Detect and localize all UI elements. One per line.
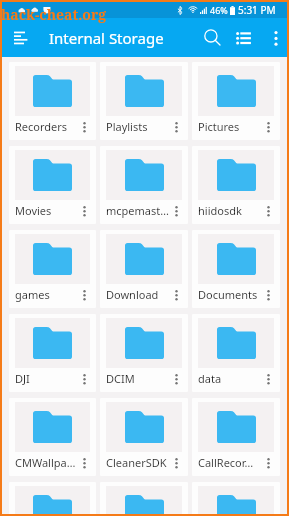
button[interactable]: Item options xyxy=(262,372,275,385)
button[interactable]: games xyxy=(9,230,96,308)
button[interactable]: Item options xyxy=(78,204,91,217)
button[interactable]: Item options xyxy=(170,288,183,301)
button[interactable]: Movies xyxy=(9,146,96,224)
button[interactable]: Item options xyxy=(78,288,91,301)
button[interactable]: Item options xyxy=(100,482,188,514)
staticText: Movies xyxy=(15,203,78,218)
staticText: CMWallpa… xyxy=(15,455,78,470)
button[interactable]: More options xyxy=(263,25,289,51)
button[interactable]: Item options xyxy=(170,120,183,133)
staticText: 46% xyxy=(210,4,228,16)
button[interactable]: data xyxy=(192,314,280,392)
button[interactable]: Item options xyxy=(78,372,91,385)
button[interactable]: Item options xyxy=(262,120,275,133)
button[interactable]: hiidosdk xyxy=(192,146,280,224)
button[interactable]: Item options xyxy=(262,204,275,217)
button[interactable]: Item options xyxy=(78,456,91,469)
staticText: Recorders xyxy=(15,119,78,134)
button[interactable]: Item options xyxy=(262,288,275,301)
staticText: DJI xyxy=(15,371,78,386)
button[interactable]: Item options xyxy=(170,456,183,469)
staticText: DCIM xyxy=(106,371,170,386)
button[interactable]: CleanerSDK xyxy=(100,398,188,476)
button[interactable]: Item options xyxy=(262,456,275,469)
staticText: 5:31 PM xyxy=(238,3,276,17)
staticText: Documents xyxy=(198,287,262,302)
staticText: data xyxy=(198,371,262,386)
button[interactable]: Recorders xyxy=(9,62,96,140)
button[interactable]: mcpemast… xyxy=(100,146,188,224)
button[interactable]: Playlists xyxy=(100,62,188,140)
staticText: games xyxy=(15,287,78,302)
button[interactable]: Switch to list view xyxy=(228,23,258,53)
staticText: CleanerSDK xyxy=(106,455,170,470)
staticText: CallRecor… xyxy=(198,455,262,470)
staticText: hack-cheat.org xyxy=(1,5,107,24)
button[interactable]: Item options xyxy=(170,372,183,385)
button[interactable]: Navigation menu xyxy=(4,21,37,54)
button[interactable]: Documents xyxy=(192,230,280,308)
staticText: Internal Storage xyxy=(49,28,164,48)
button[interactable]: Download xyxy=(100,230,188,308)
button[interactable]: Item options xyxy=(192,482,280,514)
staticText: mcpemast… xyxy=(106,203,170,218)
button[interactable]: Pictures xyxy=(192,62,280,140)
staticText: Playlists xyxy=(106,119,170,134)
button[interactable]: Item options xyxy=(78,120,91,133)
staticText: Pictures xyxy=(198,119,262,134)
button[interactable]: Item options xyxy=(9,482,96,514)
button[interactable]: Item options xyxy=(170,204,183,217)
button[interactable]: DJI xyxy=(9,314,96,392)
button[interactable]: CallRecor… xyxy=(192,398,280,476)
button[interactable]: Search xyxy=(196,21,229,54)
button[interactable]: CMWallpa… xyxy=(9,398,96,476)
staticText: hiidosdk xyxy=(198,203,262,218)
button[interactable]: DCIM xyxy=(100,314,188,392)
staticText: Download xyxy=(106,287,170,302)
